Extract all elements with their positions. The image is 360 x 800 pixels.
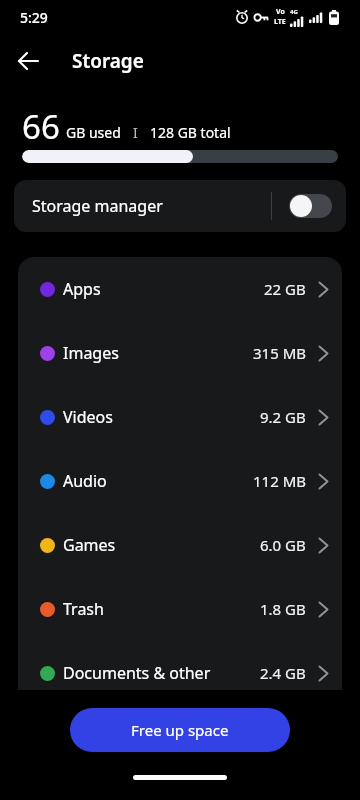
staticText: 5:29 — [20, 8, 48, 27]
staticText: LTE — [274, 17, 286, 27]
staticText: 66 — [22, 104, 60, 148]
staticText: 6.0 GB — [260, 535, 306, 555]
staticText: 315 MB — [253, 343, 306, 363]
staticText: Videos — [63, 406, 113, 428]
button[interactable]: Trash — [18, 577, 342, 641]
staticText: 2.4 GB — [260, 663, 306, 683]
staticText: Storage — [72, 48, 144, 74]
staticText: Documents & other — [63, 662, 211, 684]
staticText: Trash — [63, 598, 104, 620]
button[interactable]: Images — [18, 321, 342, 385]
staticText: 9.2 GB — [260, 407, 306, 427]
staticText: 22 GB — [264, 279, 306, 299]
staticText: GB used — [66, 123, 121, 142]
staticText: 112 MB — [253, 471, 306, 491]
staticText: Free up space — [131, 720, 229, 740]
button[interactable]: Games — [18, 513, 342, 577]
button[interactable] — [8, 41, 48, 81]
staticText: 4G — [290, 8, 298, 16]
button[interactable]: Storage manager — [14, 180, 346, 232]
staticText: Storage manager — [32, 195, 163, 217]
staticText: Images — [63, 342, 119, 364]
button[interactable]: Free up space — [70, 708, 290, 752]
staticText: 128 GB total — [150, 123, 231, 142]
button[interactable]: Videos — [18, 385, 342, 449]
button[interactable]: Audio — [18, 449, 342, 513]
button[interactable] — [289, 194, 332, 218]
staticText: Vo — [276, 7, 285, 17]
staticText: I — [133, 123, 138, 142]
button[interactable]: Apps — [18, 257, 342, 321]
staticText: Games — [63, 534, 116, 556]
staticText: Apps — [63, 278, 101, 300]
button[interactable]: Documents & other — [18, 641, 342, 705]
staticText: Audio — [63, 470, 107, 492]
staticText: 1.8 GB — [260, 599, 306, 619]
